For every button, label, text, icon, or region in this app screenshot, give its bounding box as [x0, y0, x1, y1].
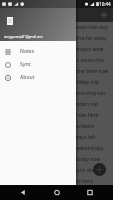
- staticText: aenggucamjd01@gmail.com: [4, 35, 43, 39]
- staticText: Birthday list of all the family members: [5, 123, 95, 130]
- button[interactable]: About: [0, 71, 76, 84]
- staticText: Recipe: pasta with fresh tomato sauce mi…: [5, 57, 104, 64]
- button[interactable]: Shopping list for the weekend trip far a…: [0, 33, 113, 44]
- staticText: 10:44: [99, 1, 111, 7]
- staticText: Last note in the whole of this list here: [5, 178, 93, 185]
- staticText: Ideas for the new mobile app project wow: [5, 46, 104, 53]
- button[interactable]: Add note: [99, 10, 109, 20]
- staticText: Notes: [20, 48, 35, 55]
- button[interactable]: Daily journal entry written for today no…: [0, 154, 113, 165]
- button[interactable]: Ideas for the new mobile app project wow: [0, 44, 113, 55]
- staticText: About: [20, 74, 35, 81]
- button[interactable]: Passwords hint list for the new site her…: [0, 110, 113, 121]
- button[interactable]: Last note in the whole of this list here: [0, 176, 113, 187]
- button[interactable]: Books to read during this summer time no…: [0, 66, 113, 77]
- staticText: Meeting notes for the team review mon da…: [5, 24, 108, 31]
- staticText: Workout plan for every single morning ru…: [5, 90, 106, 97]
- staticText: Sync: [20, 61, 31, 68]
- button[interactable]: Gift ideas for the next few holidays lef…: [0, 132, 113, 143]
- button[interactable]: Home: [46, 185, 68, 200]
- button[interactable]: Recipe: pasta with fresh tomato sauce mi…: [0, 55, 113, 66]
- button[interactable]: New note: [93, 163, 106, 176]
- button[interactable]: Travel plan for the next long holiday tr…: [0, 77, 113, 88]
- staticText: Books to read during this summer time no…: [5, 68, 109, 75]
- staticText: Project todo list and daily reminders se…: [5, 101, 99, 108]
- button[interactable]: Random thoughts before going to sleep in: [0, 165, 113, 176]
- staticText: Travel plan for the next long holiday tr…: [5, 79, 99, 86]
- staticText: Shopping list for the weekend trip far a…: [5, 35, 107, 42]
- staticText: Notes: [15, 10, 35, 20]
- staticText: Daily journal entry written for today no…: [5, 156, 101, 163]
- staticText: Passwords hint list for the new site her…: [5, 112, 99, 119]
- button[interactable]: Movies to watch on the long weekend day: [0, 143, 113, 154]
- staticText: Gift ideas for the next few holidays lef…: [5, 134, 96, 141]
- staticText: Random thoughts before going to sleep in: [5, 167, 105, 174]
- button[interactable]: Birthday list of all the family members: [0, 121, 113, 132]
- staticText: Movies to watch on the long weekend day: [5, 145, 104, 152]
- button[interactable]: Project todo list and daily reminders se…: [0, 99, 113, 110]
- button[interactable]: Sync: [0, 58, 76, 71]
- button[interactable]: Back: [12, 185, 34, 200]
- button[interactable]: Recents: [79, 185, 101, 200]
- button[interactable]: Workout plan for every single morning ru…: [0, 88, 113, 99]
- button[interactable]: Meeting notes for the team review mon da…: [0, 22, 113, 33]
- button[interactable]: Notes: [0, 45, 76, 58]
